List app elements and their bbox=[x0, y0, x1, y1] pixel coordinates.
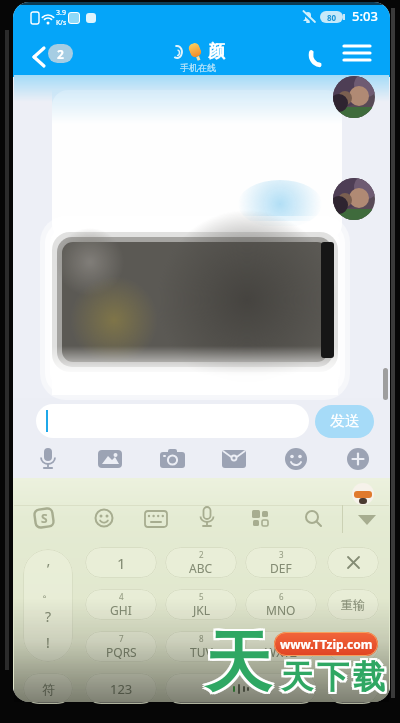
staticText: 2 bbox=[199, 549, 204, 560]
button[interactable] bbox=[346, 447, 370, 471]
button[interactable]: 9 bbox=[245, 631, 317, 662]
staticText: 9 bbox=[279, 633, 284, 644]
staticText: 123 bbox=[110, 680, 133, 698]
staticText: 发送 bbox=[330, 412, 360, 431]
staticText: ABC bbox=[189, 560, 213, 576]
button[interactable] bbox=[344, 44, 371, 64]
button[interactable] bbox=[36, 404, 309, 438]
button[interactable] bbox=[333, 178, 375, 220]
button[interactable]: 123 bbox=[85, 673, 157, 704]
staticText: 3 bbox=[279, 549, 284, 560]
staticText: www.TTzip.com bbox=[280, 636, 373, 652]
staticText: 5 bbox=[199, 591, 204, 602]
staticText: WXYZ bbox=[265, 644, 297, 660]
staticText: 1 bbox=[117, 553, 126, 573]
button[interactable] bbox=[160, 447, 184, 471]
button[interactable] bbox=[333, 76, 375, 118]
staticText: 天 bbox=[207, 623, 273, 706]
staticText: 天下载 bbox=[279, 655, 387, 695]
button[interactable] bbox=[327, 631, 379, 662]
staticText: 3.9 bbox=[56, 8, 66, 18]
staticText: 天 bbox=[203, 621, 269, 704]
button[interactable] bbox=[327, 673, 379, 704]
button[interactable] bbox=[145, 508, 167, 530]
staticText: 天下载 bbox=[281, 659, 389, 699]
staticText: 天 bbox=[203, 619, 269, 702]
staticText: PQRS bbox=[106, 644, 137, 660]
button[interactable] bbox=[33, 507, 55, 529]
staticText: 7 bbox=[119, 633, 124, 644]
staticText: TUV bbox=[190, 644, 213, 660]
staticText: 手机在线 bbox=[180, 62, 216, 73]
staticText: 天 bbox=[205, 623, 271, 706]
staticText: 4 bbox=[119, 591, 124, 602]
staticText: JKL bbox=[193, 602, 210, 618]
button[interactable]: ’ bbox=[23, 549, 73, 662]
button[interactable] bbox=[308, 44, 334, 68]
button[interactable] bbox=[36, 447, 60, 471]
staticText: 5:03 bbox=[352, 7, 378, 25]
staticText: GHI bbox=[110, 602, 132, 618]
staticText: 天下载 bbox=[277, 655, 385, 695]
staticText: 。 bbox=[42, 585, 54, 600]
button[interactable] bbox=[352, 508, 382, 532]
staticText: 天 bbox=[207, 621, 273, 704]
button[interactable] bbox=[250, 508, 272, 530]
staticText: ! bbox=[46, 633, 50, 652]
button[interactable] bbox=[284, 447, 308, 471]
staticText: 6 bbox=[279, 591, 284, 602]
staticText: ’ bbox=[47, 559, 50, 578]
button[interactable] bbox=[196, 506, 218, 528]
staticText: 天 bbox=[205, 619, 271, 702]
button[interactable]: 8 bbox=[165, 631, 237, 662]
staticText: 天下载 bbox=[281, 655, 389, 695]
button[interactable]: 发送 bbox=[315, 405, 374, 438]
button[interactable] bbox=[98, 447, 122, 471]
staticText: 天下载 bbox=[281, 657, 389, 697]
button[interactable]: 2 bbox=[165, 547, 237, 578]
staticText: 重输 bbox=[341, 597, 365, 612]
staticText: 天 bbox=[203, 623, 269, 706]
staticText: MNO bbox=[266, 602, 296, 618]
button[interactable]: 1 bbox=[85, 547, 157, 578]
staticText: K/s bbox=[56, 18, 67, 28]
button[interactable]: 4 bbox=[85, 589, 157, 620]
staticText: 天 bbox=[205, 621, 271, 704]
button[interactable] bbox=[30, 46, 48, 68]
staticText: 8 bbox=[199, 633, 204, 644]
staticText: 天下载 bbox=[277, 657, 385, 697]
button[interactable]: 5 bbox=[165, 589, 237, 620]
button[interactable] bbox=[303, 508, 325, 530]
staticText: ? bbox=[45, 607, 52, 626]
button[interactable]: 符 bbox=[23, 673, 73, 704]
button[interactable] bbox=[222, 447, 246, 471]
button[interactable]: 7 bbox=[85, 631, 157, 662]
staticText: 80 bbox=[327, 12, 337, 23]
button[interactable]: 重输 bbox=[327, 589, 379, 620]
button[interactable]: 6 bbox=[245, 589, 317, 620]
staticText: S bbox=[41, 510, 48, 526]
staticText: 符 bbox=[42, 681, 55, 697]
button[interactable] bbox=[93, 507, 115, 529]
staticText: DEF bbox=[270, 560, 292, 576]
button[interactable]: 3 bbox=[245, 547, 317, 578]
staticText: 天下载 bbox=[277, 659, 385, 699]
staticText: 天下载 bbox=[279, 659, 387, 699]
staticText: 天 bbox=[207, 619, 273, 702]
button[interactable] bbox=[327, 547, 379, 578]
staticText: 2 bbox=[57, 46, 64, 62]
button[interactable] bbox=[165, 673, 317, 704]
staticText: 天下载 bbox=[279, 657, 387, 697]
button[interactable]: 2 bbox=[48, 44, 73, 63]
staticText: 颜 bbox=[208, 41, 225, 62]
